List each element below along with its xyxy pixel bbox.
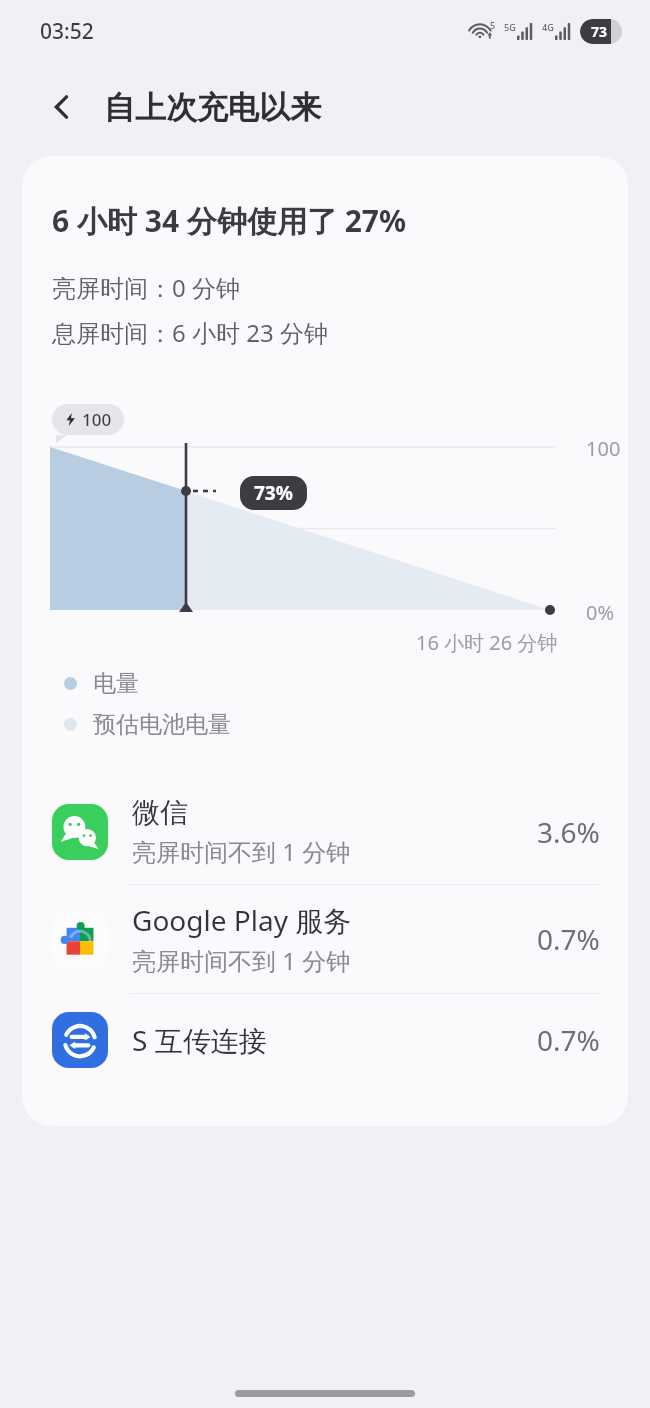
staticText: 03:52 xyxy=(40,17,94,46)
staticText: 亮屏时间不到 1 分钟 xyxy=(132,944,351,977)
staticText: 100 xyxy=(82,408,112,431)
staticText: 0% xyxy=(586,599,615,626)
staticText: 息屏时间：6 小时 23 分钟 xyxy=(52,316,328,349)
staticText: 6 小时 34 分钟使用了 27% xyxy=(52,200,407,241)
staticText: 3.6% xyxy=(537,813,600,851)
staticText: 73 xyxy=(591,22,608,41)
staticText: 16 小时 26 分钟 xyxy=(416,629,558,656)
staticText: 73% xyxy=(254,480,293,506)
staticText: S 互传连接 xyxy=(132,1021,267,1059)
button[interactable]: S 互传连接 xyxy=(22,994,628,1086)
staticText: 5 xyxy=(490,19,496,31)
staticText: 5G xyxy=(504,21,516,33)
staticText: 亮屏时间不到 1 分钟 xyxy=(132,835,351,868)
staticText: 预估电池电量 xyxy=(93,710,231,739)
staticText: 自上次充电以来 xyxy=(104,88,321,127)
staticText: 0.7% xyxy=(537,1021,600,1059)
staticText: 电量 xyxy=(93,669,139,698)
staticText: 亮屏时间：0 分钟 xyxy=(52,271,240,304)
staticText: 100 xyxy=(586,435,621,462)
button[interactable]: Google Play 服务 xyxy=(22,885,628,993)
staticText: 0.7% xyxy=(537,920,600,958)
staticText: 微信 xyxy=(132,795,188,830)
staticText: 4G xyxy=(542,21,554,33)
button[interactable]: 微信 xyxy=(22,779,628,884)
staticText: Google Play 服务 xyxy=(132,901,352,939)
button[interactable]: 返回 xyxy=(36,81,88,133)
